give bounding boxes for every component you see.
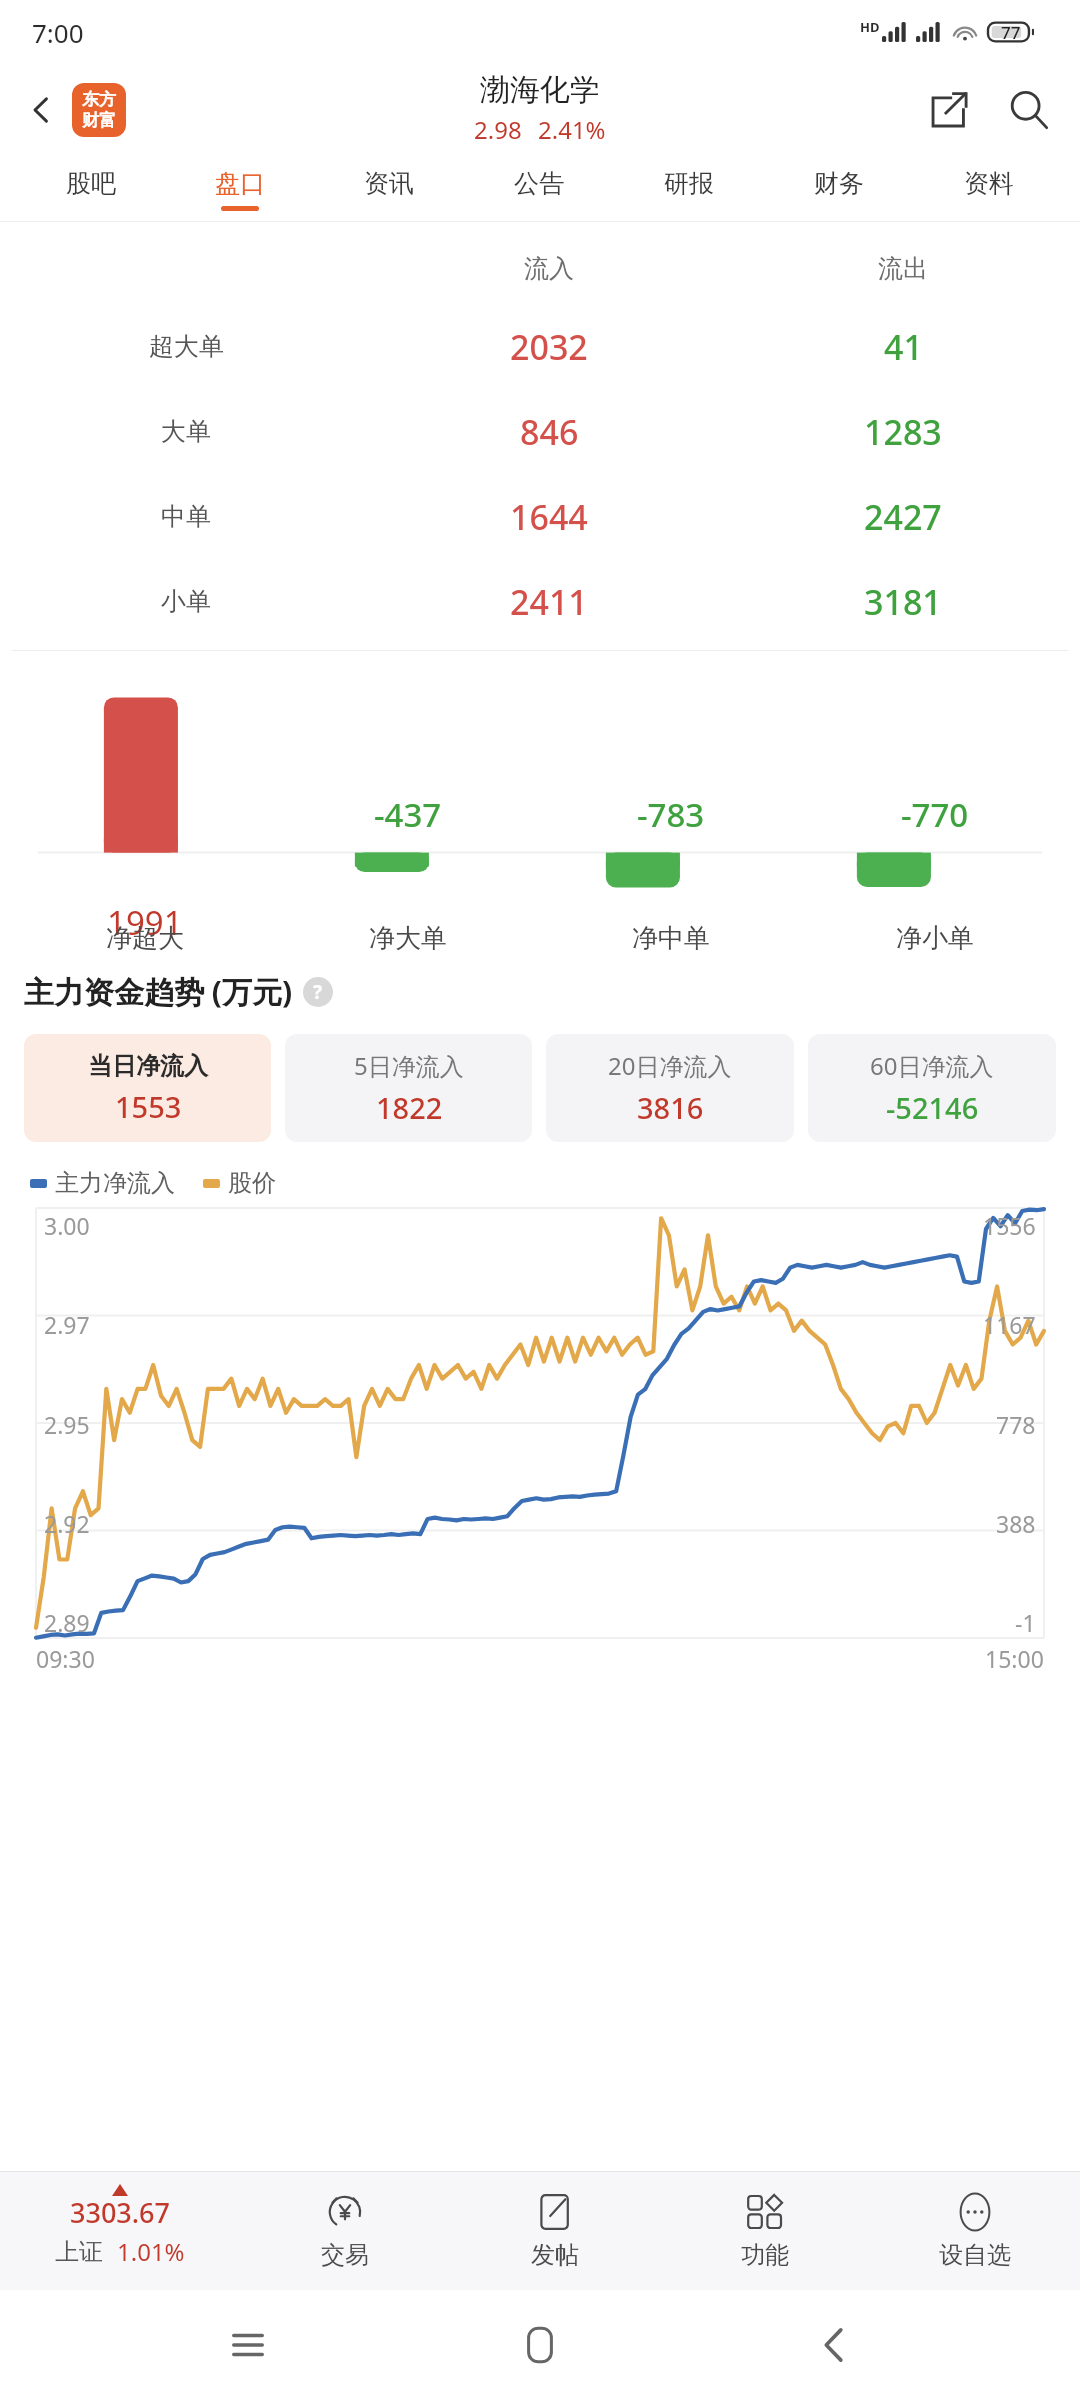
staticText: 2.89 — [44, 1607, 90, 1638]
staticText: ? — [313, 979, 323, 1005]
staticText: 中单 — [161, 501, 211, 532]
staticText: 09:30 — [36, 1643, 95, 1674]
staticText: 流入 — [524, 253, 574, 284]
button[interactable]: 发帖 — [450, 2172, 660, 2290]
staticText: 渤海化学 — [480, 71, 600, 109]
staticText: -1 — [1015, 1607, 1036, 1638]
button[interactable]: 盘口 — [165, 156, 314, 222]
staticText: 小单 — [161, 586, 211, 617]
staticText: 2.97 — [44, 1309, 90, 1340]
staticText: 3816 — [637, 1088, 704, 1127]
button[interactable]: 3303.67 — [0, 2172, 240, 2290]
staticText: 功能 — [741, 2240, 789, 2270]
staticText: 净大单 — [369, 922, 447, 955]
staticText: HD — [860, 18, 880, 36]
staticText: 778 — [996, 1409, 1036, 1440]
staticText: 交易 — [321, 2240, 369, 2270]
button[interactable]: 中单 — [0, 474, 1080, 559]
staticText: 主力资金趋势 (万元) — [24, 971, 293, 1012]
staticText: 设自选 — [939, 2240, 1011, 2270]
staticText: 1553 — [115, 1087, 182, 1126]
button[interactable]: 当日净流入 — [24, 1034, 271, 1142]
staticText: 15:00 — [985, 1643, 1044, 1674]
staticText: 净中单 — [632, 922, 710, 955]
staticText: 388 — [996, 1508, 1036, 1539]
staticText: 2.92 — [44, 1508, 90, 1539]
button[interactable]: Search — [996, 77, 1062, 143]
staticText: 当日净流入 — [88, 1051, 208, 1081]
button[interactable]: 小单 — [0, 559, 1080, 644]
staticText: 流出 — [878, 253, 928, 284]
staticText: 846 — [520, 409, 579, 455]
button[interactable]: 财务 — [764, 156, 914, 222]
button[interactable]: 交易 — [240, 2172, 450, 2290]
staticText: 77 — [1001, 21, 1021, 44]
staticText: 1644 — [510, 494, 588, 540]
staticText: 2.41% — [538, 113, 606, 146]
staticText: 1556 — [983, 1210, 1036, 1241]
button[interactable]: Home — [495, 2300, 585, 2390]
staticText: 研报 — [664, 168, 714, 199]
staticText: 7:00 — [32, 15, 84, 50]
staticText: 20日净流入 — [608, 1049, 732, 1082]
staticText: 主力净流入 — [55, 1168, 175, 1198]
staticText: 资料 — [964, 168, 1014, 199]
staticText: 2032 — [510, 324, 588, 370]
staticText: 1822 — [376, 1088, 443, 1127]
button[interactable]: 功能 — [660, 2172, 870, 2290]
button[interactable]: East Money logo — [72, 83, 126, 137]
staticText: 1167 — [983, 1309, 1036, 1340]
button[interactable]: Help — [303, 977, 333, 1007]
staticText: 财富 — [82, 110, 116, 131]
button[interactable]: 60日净流入 — [808, 1034, 1056, 1142]
staticText: 东方 — [82, 89, 116, 110]
staticText: 资讯 — [364, 168, 414, 199]
button[interactable]: 20日净流入 — [546, 1034, 794, 1142]
staticText: 股吧 — [66, 168, 116, 199]
button[interactable]: 5日净流入 — [285, 1034, 532, 1142]
button[interactable]: 资讯 — [314, 156, 464, 222]
button[interactable]: 大单 — [0, 389, 1080, 474]
button[interactable]: Share — [916, 77, 982, 143]
staticText: 盘口 — [215, 168, 265, 199]
staticText: 净超大 — [106, 922, 184, 955]
staticText: 2411 — [510, 579, 588, 625]
button[interactable]: 超大单 — [0, 304, 1080, 389]
button[interactable]: 研报 — [614, 156, 764, 222]
staticText: 财务 — [814, 168, 864, 199]
staticText: 1.01% — [117, 2235, 185, 2268]
button[interactable]: Back — [14, 83, 68, 137]
staticText: 1283 — [864, 409, 942, 455]
staticText: 超大单 — [149, 331, 224, 362]
staticText: 上证 — [55, 2237, 103, 2267]
button[interactable]: 设自选 — [870, 2172, 1080, 2290]
staticText: 2.98 — [474, 113, 522, 146]
staticText: 3181 — [864, 579, 942, 625]
staticText: -770 — [901, 792, 969, 837]
staticText: 3303.67 — [70, 2194, 171, 2231]
staticText: 发帖 — [531, 2240, 579, 2270]
button[interactable]: 资料 — [914, 156, 1064, 222]
staticText: -783 — [637, 792, 705, 837]
staticText: 5日净流入 — [354, 1049, 464, 1082]
staticText: 2.95 — [44, 1409, 90, 1440]
staticText: 60日净流入 — [870, 1049, 994, 1082]
staticText: 1991 — [107, 900, 183, 945]
staticText: 2427 — [864, 494, 942, 540]
button[interactable]: 股吧 — [16, 156, 165, 222]
staticText: 大单 — [161, 416, 211, 447]
staticText: -52146 — [886, 1088, 979, 1127]
button[interactable]: 公告 — [464, 156, 614, 222]
button[interactable]: Recents — [203, 2300, 293, 2390]
staticText: 股价 — [228, 1168, 276, 1198]
staticText: 公告 — [514, 168, 564, 199]
staticText: 净小单 — [896, 922, 974, 955]
staticText: 3.00 — [44, 1210, 90, 1241]
staticText: 41 — [884, 324, 923, 370]
button[interactable]: Back — [788, 2300, 878, 2390]
staticText: -437 — [374, 792, 442, 837]
